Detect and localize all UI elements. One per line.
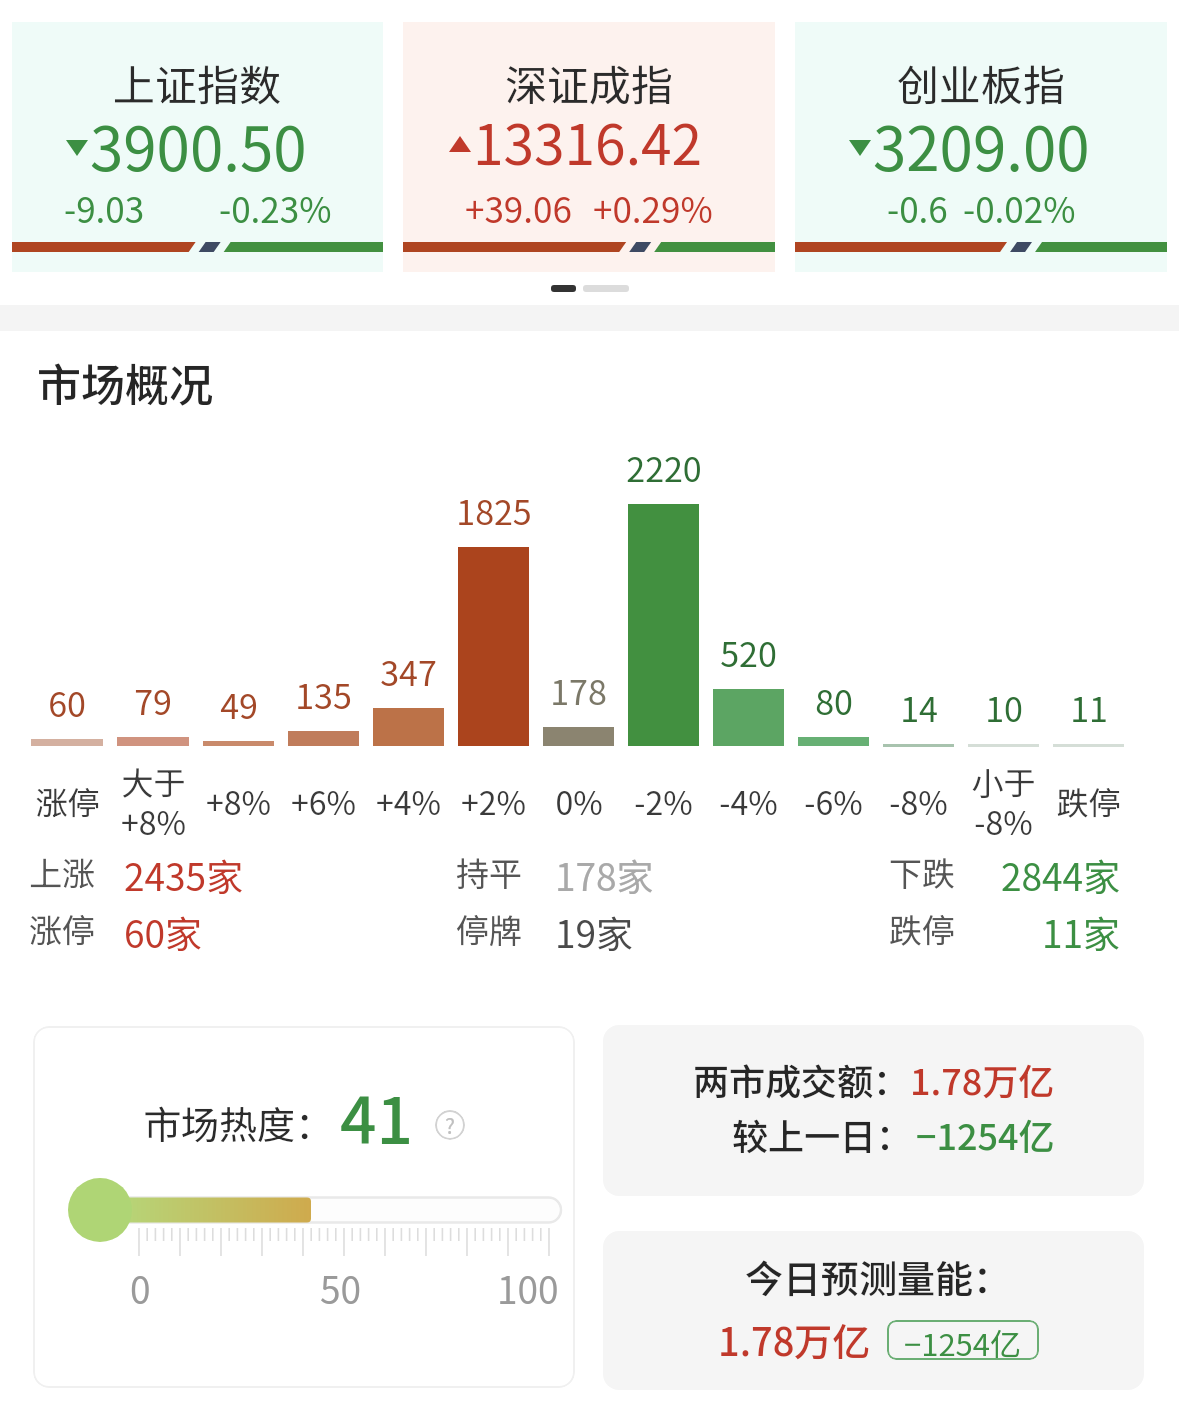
staticText: 停牌 [456, 905, 522, 951]
staticText: 较上一日： [732, 1108, 913, 1160]
staticText: 两市成交额： [693, 1053, 910, 1105]
staticText: 创业板指 [897, 52, 1066, 113]
staticText: 上涨 [29, 848, 95, 894]
staticText: 520 [720, 628, 777, 677]
button[interactable]: 两市成交额： [603, 1025, 1144, 1196]
staticText: −1254亿 [916, 1108, 1055, 1160]
button[interactable]: 今日预测量能： [603, 1231, 1144, 1390]
staticText: 135 [295, 670, 352, 719]
staticText: 10 [985, 683, 1023, 732]
staticText: 跌停 [1056, 778, 1121, 824]
staticText: +4% [376, 778, 441, 824]
staticText: 跌停 [889, 905, 955, 951]
staticText: 2844家 [1001, 848, 1121, 894]
staticText: 80 [815, 676, 853, 725]
staticText: 19家 [555, 905, 634, 951]
staticText: 1.78万亿 [718, 1312, 871, 1367]
staticText: 178家 [555, 848, 654, 894]
staticText: ? [445, 1110, 455, 1140]
staticText: 60家 [124, 905, 203, 951]
staticText: 1.78万亿 [910, 1053, 1055, 1105]
staticText: 60 [48, 678, 86, 727]
staticText: 100 [497, 1261, 559, 1315]
staticText: 0 [130, 1261, 151, 1315]
staticText: 14 [900, 683, 938, 732]
staticText: 深证成指 [505, 52, 674, 113]
staticText: 49 [220, 680, 258, 729]
staticText: 1825 [456, 486, 532, 535]
staticText: 3900.50 [90, 101, 307, 188]
staticText: +0.29% [593, 182, 713, 233]
staticText: -2% [634, 778, 693, 824]
staticText: 涨停 [29, 905, 95, 951]
staticText: 11家 [1042, 905, 1121, 951]
staticText: 50 [320, 1261, 362, 1315]
staticText: 0% [555, 778, 603, 824]
staticText: 79 [134, 676, 172, 725]
staticText: −1254亿 [904, 1320, 1022, 1360]
staticText: 持平 [456, 848, 522, 894]
staticText: 大于 +8% [121, 758, 186, 844]
staticText: 上证指数 [113, 52, 282, 113]
staticText: 41 [340, 1070, 413, 1163]
button[interactable]: 帮助 [435, 1110, 465, 1140]
staticText: 今日预测量能： [745, 1249, 1012, 1304]
staticText: 市场热度： [143, 1095, 334, 1150]
staticText: -0.23% [219, 182, 332, 233]
staticText: 347 [380, 647, 437, 696]
button[interactable]: 上证指数 [12, 22, 383, 272]
button[interactable]: 市场热度： [33, 1026, 575, 1388]
staticText: -0.6 [887, 182, 948, 233]
staticText: -9.03 [64, 182, 145, 233]
button[interactable]: 深证成指 [403, 22, 775, 272]
staticText: 11 [1070, 683, 1108, 732]
staticText: 涨停 [35, 778, 100, 824]
staticText: 178 [550, 666, 607, 715]
button[interactable]: 创业板指 [795, 22, 1167, 272]
staticText: 2220 [626, 443, 702, 492]
staticText: 3209.00 [873, 101, 1090, 188]
staticText: -6% [804, 778, 863, 824]
staticText: +39.06 [465, 182, 572, 233]
staticText: -8% [889, 778, 948, 824]
staticText: +8% [206, 778, 271, 824]
staticText: -4% [719, 778, 778, 824]
staticText: +2% [461, 778, 526, 824]
staticText: 市场概况 [37, 350, 213, 414]
staticText: 下跌 [889, 848, 955, 894]
staticText: 13316.42 [473, 101, 702, 181]
staticText: 小于 -8% [971, 758, 1036, 844]
staticText: +6% [291, 778, 356, 824]
staticText: 2435家 [124, 848, 244, 894]
staticText: -0.02% [963, 182, 1076, 233]
